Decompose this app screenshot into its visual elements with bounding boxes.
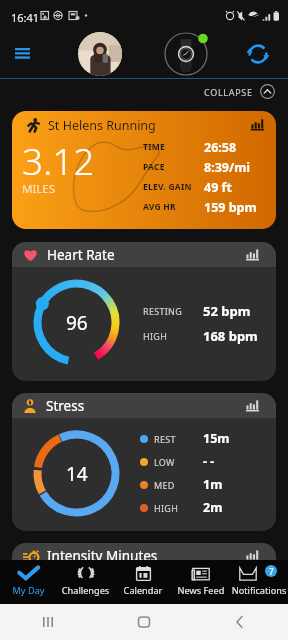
staticText: HIGH	[154, 502, 203, 514]
button[interactable]: Sync	[238, 34, 278, 74]
staticText: 1m	[203, 476, 223, 493]
staticText: Notifications	[230, 584, 288, 597]
staticText: My Day	[0, 584, 57, 597]
staticText: LOW	[154, 456, 203, 468]
staticText: 96	[66, 310, 88, 336]
staticText: 2m	[203, 499, 223, 516]
button[interactable]: Heart Rate	[12, 242, 276, 381]
button[interactable]: Challenges	[57, 560, 114, 604]
staticText: RESTING	[143, 305, 203, 317]
staticText: 16:41	[11, 10, 40, 25]
button[interactable]: Back	[192, 604, 288, 640]
staticText: HIGH	[143, 330, 203, 342]
button[interactable]: Home	[96, 604, 192, 640]
staticText: 49 ft	[204, 179, 232, 196]
staticText: 159 bpm	[204, 199, 257, 216]
staticText: News Feed	[172, 584, 230, 597]
button[interactable]: Menu	[5, 36, 40, 71]
staticText: MED	[154, 479, 203, 491]
staticText: 26:58	[204, 139, 237, 156]
staticText: COLLAPSE	[204, 86, 253, 98]
staticText: Heart Rate	[47, 246, 115, 264]
staticText: ELEV. GAIN	[143, 181, 204, 193]
button[interactable]: COLLAPSE	[202, 84, 277, 99]
staticText: Intensity Minutes	[47, 547, 158, 565]
button[interactable]: Galaxy Watch	[163, 31, 209, 77]
button[interactable]: News Feed	[172, 560, 230, 604]
staticText: 3.12	[22, 135, 95, 185]
button[interactable]: Stress	[12, 393, 276, 531]
staticText: 8:39/mi	[204, 159, 251, 176]
staticText: St Helens Running	[48, 117, 156, 134]
button[interactable]: St Helens Running	[12, 111, 276, 229]
button[interactable]: Recents	[0, 604, 96, 640]
staticText: - -	[203, 453, 215, 470]
staticText: Calendar	[114, 584, 172, 597]
button[interactable]: 7	[230, 560, 288, 604]
staticText: 14	[66, 461, 88, 487]
staticText: REST	[154, 433, 203, 445]
staticText: 52 bpm	[203, 302, 251, 320]
staticText: TIME	[143, 141, 204, 153]
staticText: 7	[269, 566, 274, 577]
staticText: 168 bpm	[203, 327, 258, 345]
button[interactable]: My Day	[0, 560, 57, 604]
staticText: MILES	[22, 181, 56, 197]
staticText: Challenges	[57, 584, 114, 597]
button[interactable]: Calendar	[114, 560, 172, 604]
button[interactable]: Profile	[78, 32, 122, 76]
staticText: Stress	[46, 397, 85, 415]
button[interactable]: Intensity Minutes	[12, 543, 276, 628]
staticText: PACE	[143, 161, 204, 173]
staticText: 15m	[203, 430, 230, 447]
staticText: AVG HR	[143, 201, 204, 213]
